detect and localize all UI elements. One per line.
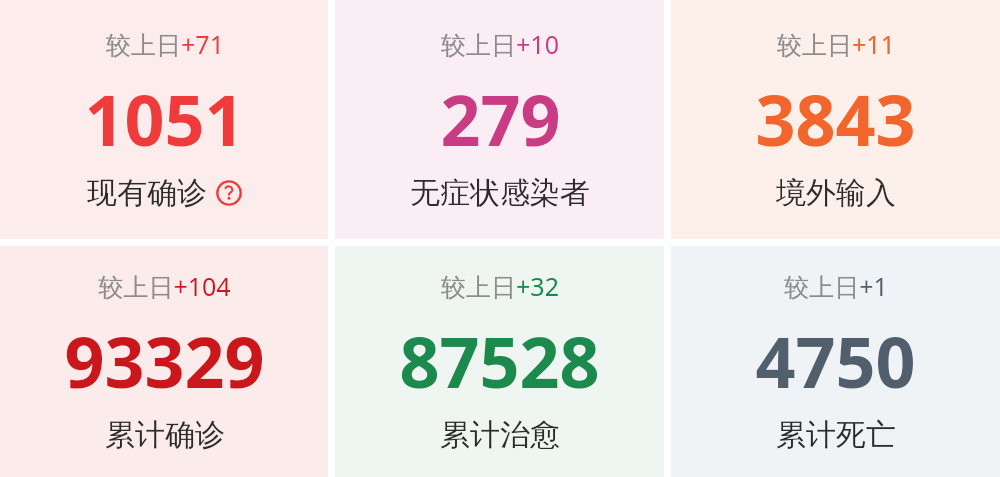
staticText: 93329 bbox=[64, 313, 265, 408]
button[interactable]: 现有确诊说明 bbox=[216, 180, 242, 206]
staticText: 境外输入 bbox=[776, 174, 896, 212]
button[interactable]: 较上日+104 bbox=[0, 246, 328, 477]
staticText: 279 bbox=[440, 71, 561, 166]
staticText: 现有确诊 bbox=[87, 174, 207, 212]
staticText: 3843 bbox=[755, 71, 916, 166]
button[interactable]: 较上日+10 bbox=[335, 0, 664, 239]
button[interactable]: 较上日+71 bbox=[0, 0, 328, 239]
staticText: 1051 bbox=[84, 71, 245, 166]
staticText: 累计治愈 bbox=[440, 416, 560, 454]
button[interactable]: 较上日+11 bbox=[671, 0, 1000, 239]
staticText: 较上日+11 bbox=[777, 27, 895, 61]
staticText: 较上日+71 bbox=[106, 27, 224, 61]
staticText: 较上日+1 bbox=[784, 269, 888, 303]
staticText: 累计死亡 bbox=[776, 416, 896, 454]
staticText: 较上日+32 bbox=[441, 269, 559, 303]
staticText: 4750 bbox=[755, 313, 916, 408]
button[interactable]: 较上日+32 bbox=[335, 246, 664, 477]
staticText: 87528 bbox=[399, 313, 600, 408]
staticText: 无症状感染者 bbox=[410, 174, 590, 212]
staticText: 较上日+10 bbox=[441, 27, 559, 61]
staticText: 累计确诊 bbox=[105, 416, 225, 454]
staticText: 较上日+104 bbox=[98, 269, 231, 303]
button[interactable]: 较上日+1 bbox=[671, 246, 1000, 477]
